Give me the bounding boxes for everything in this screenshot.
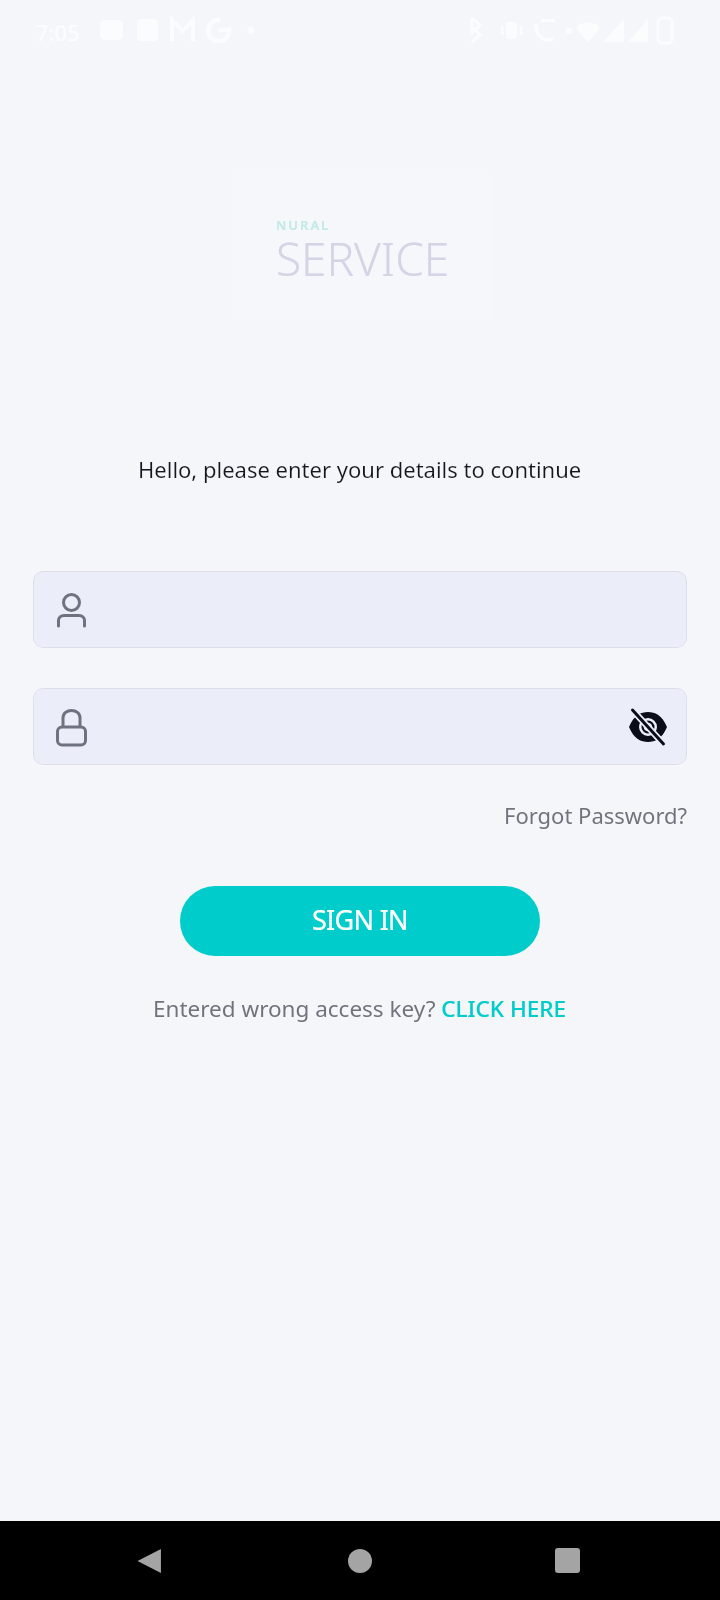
button[interactable]: Home xyxy=(336,1521,384,1600)
button[interactable]: Entered wrong access key? CLICK HERE xyxy=(153,993,567,1024)
staticText: SERVICE xyxy=(276,227,450,290)
button[interactable]: Recent apps xyxy=(543,1521,591,1600)
staticText: NURAL xyxy=(276,216,331,234)
staticText: Entered wrong access key? CLICK HERE xyxy=(153,993,567,1024)
button[interactable]: Show password xyxy=(626,705,670,749)
button[interactable]: Forgot Password? xyxy=(498,796,694,834)
button[interactable]: Back xyxy=(126,1521,174,1600)
button[interactable] xyxy=(33,571,687,648)
button[interactable]: Show password xyxy=(33,688,687,765)
staticText: Hello, please enter your details to cont… xyxy=(138,454,582,484)
staticText: SIGN IN xyxy=(312,901,408,938)
staticText: Forgot Password? xyxy=(504,800,688,830)
button[interactable]: SIGN IN xyxy=(180,886,540,956)
